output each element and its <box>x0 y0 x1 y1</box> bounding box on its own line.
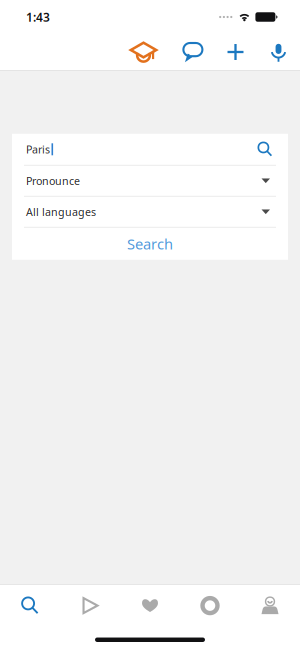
button[interactable]: Voice search <box>257 34 300 70</box>
staticText: Pronounce <box>26 174 80 188</box>
staticText: 1:43 <box>26 9 50 25</box>
button[interactable]: Profile <box>240 586 300 626</box>
button[interactable]: Play <box>60 586 120 626</box>
button[interactable]: Search <box>12 228 288 260</box>
staticText: Paris <box>26 142 50 156</box>
button[interactable]: Search <box>0 586 60 626</box>
staticText: Search <box>127 234 173 254</box>
button[interactable]: Favorites <box>120 586 180 626</box>
button[interactable]: Search <box>251 134 279 164</box>
button[interactable]: Messages <box>171 34 214 70</box>
staticText: All languages <box>26 205 96 219</box>
button[interactable]: Record <box>180 586 240 626</box>
button[interactable]: Learn <box>116 34 171 70</box>
button[interactable]: All languages <box>12 197 288 227</box>
button[interactable]: Pronounce <box>12 166 288 196</box>
button[interactable]: Add <box>214 34 257 70</box>
